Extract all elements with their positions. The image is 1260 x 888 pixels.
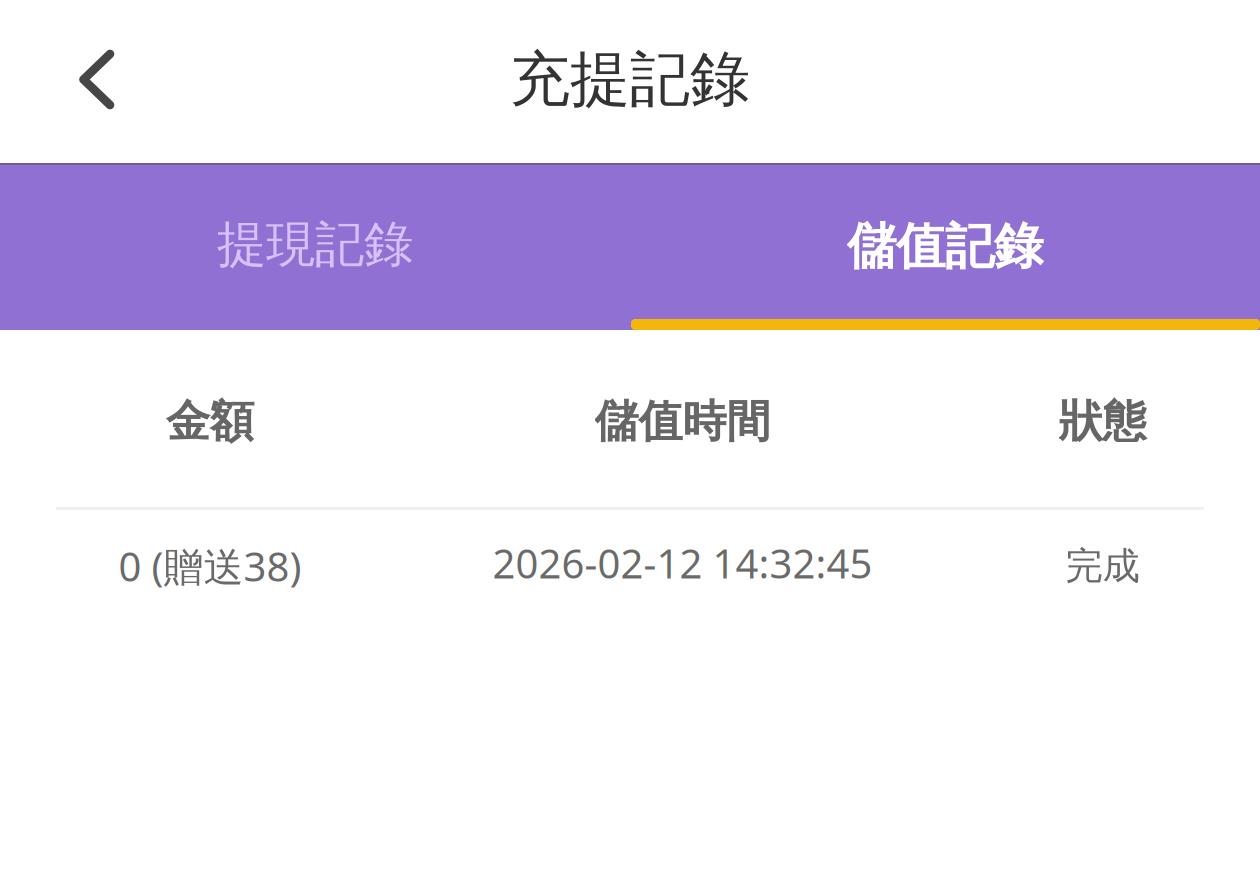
- staticText: 0 (贈送38): [118, 539, 301, 592]
- staticText: 儲值時間: [594, 394, 770, 448]
- staticText: 2026-02-12 14:32:45: [492, 536, 872, 589]
- staticText: 狀態: [1058, 394, 1146, 448]
- staticText: 提現記錄: [217, 214, 413, 275]
- button[interactable]: 儲值記錄: [630, 163, 1260, 330]
- staticText: 儲值記錄: [847, 216, 1043, 277]
- staticText: 充提記錄: [510, 43, 750, 116]
- button[interactable]: Back: [0, 21, 193, 141]
- staticText: 金額: [166, 394, 254, 448]
- button[interactable]: 提現記錄: [0, 163, 630, 330]
- staticText: 完成: [1065, 543, 1139, 589]
